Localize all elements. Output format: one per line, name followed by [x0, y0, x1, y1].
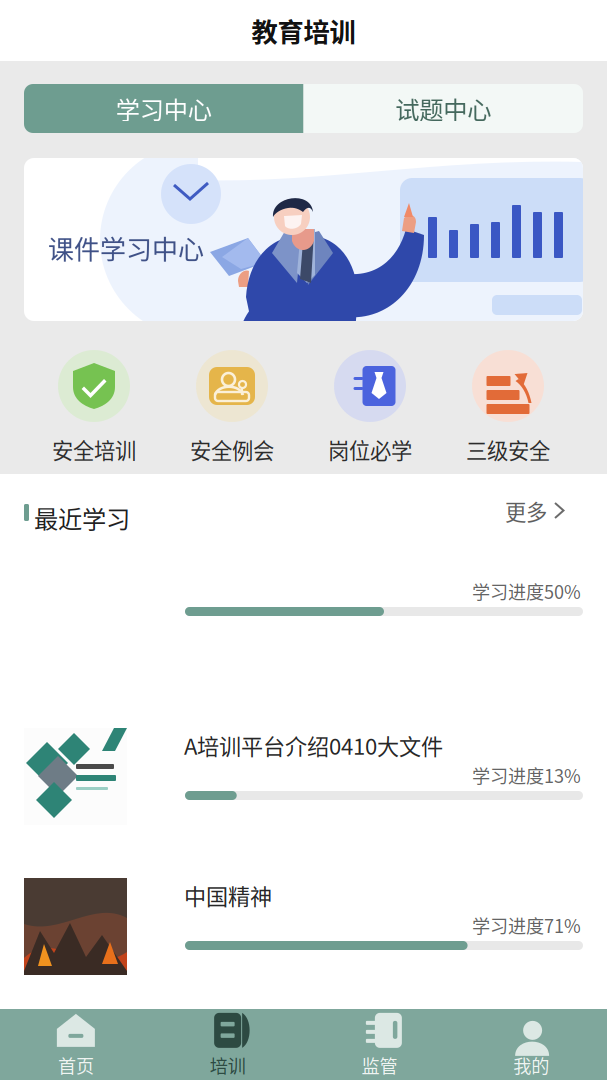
- button[interactable]: 安全培训: [25, 350, 163, 465]
- button[interactable]: 试题中心: [303, 84, 583, 133]
- staticText: 学习进度71%: [472, 912, 581, 938]
- staticText: 学习进度13%: [472, 762, 581, 788]
- button[interactable]: 学习进度50%: [24, 540, 604, 652]
- button[interactable]: 培训: [152, 1003, 304, 1080]
- staticText: 首页: [58, 1052, 94, 1078]
- staticText: 安全例会: [190, 434, 274, 465]
- staticText: 教育培训: [251, 11, 355, 49]
- staticText: 监管: [361, 1052, 397, 1078]
- button[interactable]: 首页: [0, 1003, 152, 1080]
- staticText: 试题中心: [395, 91, 491, 126]
- staticText: 更多: [505, 496, 547, 526]
- staticText: 最近学习: [34, 500, 130, 535]
- button[interactable]: 教育培训: [0, 0, 607, 61]
- button[interactable]: 我的: [455, 1003, 607, 1080]
- staticText: 安全培训: [52, 434, 136, 465]
- button[interactable]: 更多: [505, 496, 585, 526]
- button[interactable]: 学习中心: [24, 84, 303, 133]
- button[interactable]: 安全例会: [163, 350, 301, 465]
- button[interactable]: 中国精神: [24, 878, 604, 978]
- button[interactable]: 岗位必学: [301, 350, 439, 465]
- staticText: 学习中心: [116, 91, 212, 126]
- staticText: 三级安全: [466, 434, 550, 465]
- staticText: A培训平台介绍0410大文件: [184, 729, 443, 761]
- staticText: 学习进度50%: [472, 578, 581, 604]
- button[interactable]: 监管: [303, 1003, 455, 1080]
- staticText: 培训: [210, 1052, 246, 1078]
- staticText: 岗位必学: [328, 434, 412, 465]
- staticText: 中国精神: [184, 879, 272, 911]
- button[interactable]: A培训平台介绍0410大文件: [24, 728, 604, 828]
- staticText: 课件学习中心: [48, 229, 204, 267]
- button[interactable]: 三级安全: [439, 350, 577, 465]
- staticText: 我的: [513, 1052, 549, 1078]
- button[interactable]: 课件学习中心: [24, 158, 583, 321]
